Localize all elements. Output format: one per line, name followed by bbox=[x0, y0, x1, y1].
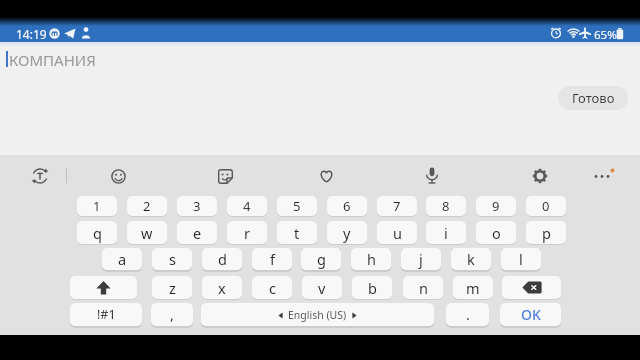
staticText: 1 bbox=[93, 197, 101, 215]
staticText: 65% bbox=[594, 27, 617, 43]
button[interactable]: 7 bbox=[377, 196, 417, 216]
button[interactable]: !#1 bbox=[70, 303, 142, 326]
staticText: 5 bbox=[293, 197, 301, 215]
staticText: t bbox=[294, 223, 300, 243]
button[interactable]: r bbox=[227, 221, 267, 244]
button[interactable]: u bbox=[377, 221, 417, 244]
staticText: g bbox=[317, 249, 326, 269]
button[interactable]: y bbox=[327, 221, 367, 244]
staticText: !#1 bbox=[97, 306, 116, 323]
staticText: КОМПАНИЯ bbox=[9, 50, 96, 70]
button[interactable]: j bbox=[401, 248, 441, 270]
button[interactable] bbox=[593, 165, 617, 181]
button[interactable] bbox=[70, 276, 137, 299]
staticText: 8 bbox=[442, 197, 450, 215]
staticText: 9 bbox=[492, 197, 500, 215]
button[interactable]: q bbox=[77, 221, 117, 244]
staticText: 2 bbox=[143, 197, 151, 215]
button[interactable]: n bbox=[403, 276, 443, 299]
button[interactable]: 6 bbox=[327, 196, 367, 216]
button[interactable]: x bbox=[202, 276, 242, 299]
staticText: Готово bbox=[572, 89, 615, 107]
staticText: 4 bbox=[243, 197, 251, 215]
staticText: v bbox=[318, 278, 326, 298]
button[interactable]: 0 bbox=[526, 196, 566, 216]
button[interactable]: OK bbox=[500, 303, 561, 326]
button[interactable]: g bbox=[301, 248, 341, 270]
button[interactable] bbox=[319, 169, 334, 184]
button[interactable] bbox=[425, 167, 439, 185]
button[interactable]: i bbox=[426, 221, 466, 244]
staticText: f bbox=[270, 249, 275, 269]
button[interactable] bbox=[31, 167, 49, 185]
staticText: y bbox=[343, 223, 351, 243]
staticText: s bbox=[169, 249, 176, 269]
staticText: r bbox=[244, 223, 250, 243]
button[interactable]: m bbox=[453, 276, 493, 299]
button[interactable]: 8 bbox=[426, 196, 466, 216]
staticText: w bbox=[141, 223, 153, 243]
staticText: u bbox=[393, 223, 402, 243]
button[interactable]: p bbox=[526, 221, 566, 244]
button[interactable]: k bbox=[451, 248, 491, 270]
staticText: . bbox=[466, 305, 470, 324]
staticText: 6 bbox=[343, 197, 351, 215]
staticText: x bbox=[218, 278, 226, 298]
button[interactable]: v bbox=[302, 276, 342, 299]
staticText: a bbox=[118, 249, 127, 269]
button[interactable]: e bbox=[177, 221, 217, 244]
staticText: j bbox=[419, 249, 423, 269]
staticText: l bbox=[519, 249, 523, 269]
button[interactable]: 1 bbox=[77, 196, 117, 216]
staticText: e bbox=[193, 223, 202, 243]
button[interactable]: 9 bbox=[476, 196, 516, 216]
staticText: d bbox=[218, 249, 227, 269]
staticText: k bbox=[467, 249, 475, 269]
staticText: c bbox=[269, 278, 276, 298]
button[interactable]: l bbox=[501, 248, 541, 270]
staticText: b bbox=[368, 278, 377, 298]
button[interactable]: Готово bbox=[558, 86, 628, 110]
button[interactable]: English (US) bbox=[201, 303, 434, 326]
button[interactable]: b bbox=[352, 276, 392, 299]
button[interactable] bbox=[532, 168, 548, 184]
staticText: i bbox=[444, 223, 448, 243]
button[interactable]: f bbox=[252, 248, 292, 270]
button[interactable]: t bbox=[277, 221, 317, 244]
button[interactable]: z bbox=[152, 276, 192, 299]
button[interactable]: c bbox=[252, 276, 292, 299]
button[interactable]: , bbox=[151, 303, 193, 326]
staticText: 0 bbox=[542, 197, 550, 215]
button[interactable]: . bbox=[446, 303, 489, 326]
staticText: z bbox=[169, 278, 176, 298]
staticText: 14:19 bbox=[16, 26, 47, 42]
button[interactable]: a bbox=[102, 248, 142, 270]
button[interactable]: w bbox=[127, 221, 167, 244]
button[interactable] bbox=[111, 169, 126, 184]
button[interactable]: 5 bbox=[277, 196, 317, 216]
staticText: English (US) bbox=[288, 308, 347, 322]
staticText: p bbox=[542, 223, 551, 243]
staticText: q bbox=[93, 223, 102, 243]
button[interactable]: o bbox=[476, 221, 516, 244]
staticText: OK bbox=[521, 305, 541, 324]
button[interactable] bbox=[502, 276, 561, 299]
staticText: m bbox=[466, 278, 480, 298]
staticText: o bbox=[492, 223, 501, 243]
button[interactable]: 2 bbox=[127, 196, 167, 216]
button[interactable]: 4 bbox=[227, 196, 267, 216]
button[interactable]: 3 bbox=[177, 196, 217, 216]
staticText: n bbox=[419, 278, 428, 298]
staticText: 7 bbox=[393, 197, 401, 215]
staticText: , bbox=[170, 305, 174, 324]
staticText: h bbox=[367, 249, 376, 269]
button[interactable]: s bbox=[152, 248, 192, 270]
button[interactable]: d bbox=[202, 248, 242, 270]
button[interactable] bbox=[218, 169, 233, 184]
staticText: 3 bbox=[193, 197, 201, 215]
button[interactable]: h bbox=[351, 248, 391, 270]
